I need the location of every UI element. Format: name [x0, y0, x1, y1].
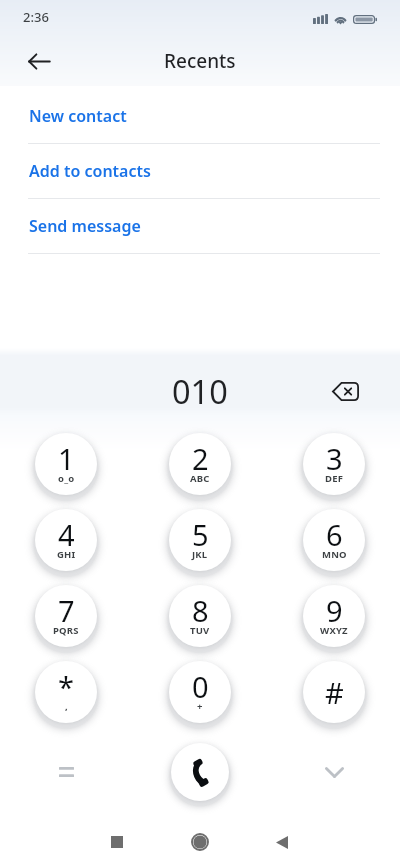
staticText: 8: [192, 591, 209, 630]
button[interactable]: Dial pad options: [42, 748, 90, 796]
button[interactable]: Call: [169, 741, 231, 803]
button[interactable]: 6: [301, 507, 367, 573]
staticText: ,: [65, 700, 68, 713]
staticText: 7: [58, 591, 75, 630]
staticText: Recents: [164, 48, 236, 74]
button[interactable]: Add to contacts: [0, 144, 400, 199]
staticText: 5: [192, 515, 209, 554]
button[interactable]: Back: [16, 38, 62, 84]
button[interactable]: 2: [167, 431, 233, 497]
staticText: DEF: [325, 472, 344, 485]
button[interactable]: 1: [33, 431, 99, 497]
staticText: WXYZ: [320, 624, 348, 637]
button[interactable]: 8: [167, 583, 233, 649]
button[interactable]: 7: [33, 583, 99, 649]
staticText: 2: [192, 439, 209, 478]
staticText: JKL: [192, 548, 208, 561]
staticText: 9: [326, 591, 343, 630]
staticText: GHI: [57, 548, 76, 561]
staticText: *: [58, 667, 74, 706]
staticText: New contact: [29, 105, 127, 127]
staticText: #: [325, 673, 344, 712]
staticText: 0: [192, 667, 209, 706]
button[interactable]: New contact: [0, 89, 400, 144]
button[interactable]: Home: [178, 820, 222, 864]
staticText: MNO: [322, 548, 347, 561]
staticText: TUV: [190, 624, 210, 637]
button[interactable]: 5: [167, 507, 233, 573]
staticText: +: [197, 700, 203, 713]
staticText: ABC: [190, 472, 210, 485]
staticText: 010: [172, 369, 228, 413]
button[interactable]: Send message: [0, 199, 400, 254]
staticText: Add to contacts: [29, 160, 151, 182]
button[interactable]: 4: [33, 507, 99, 573]
staticText: PQRS: [53, 624, 79, 637]
button[interactable]: 3: [301, 431, 367, 497]
button[interactable]: Backspace: [323, 369, 367, 413]
button[interactable]: #: [301, 659, 367, 725]
staticText: 3: [326, 439, 343, 478]
staticText: 2:36: [23, 8, 49, 26]
staticText: 1: [58, 439, 75, 478]
staticText: 6: [326, 515, 343, 554]
button[interactable]: 9: [301, 583, 367, 649]
button[interactable]: *: [33, 659, 99, 725]
button[interactable]: Hide dial pad: [310, 748, 358, 796]
staticText: o_o: [58, 472, 75, 485]
staticText: Send message: [29, 215, 141, 237]
button[interactable]: 0: [167, 659, 233, 725]
button[interactable]: Recent apps: [95, 820, 139, 864]
staticText: 4: [58, 515, 75, 554]
button[interactable]: Back: [260, 820, 304, 864]
